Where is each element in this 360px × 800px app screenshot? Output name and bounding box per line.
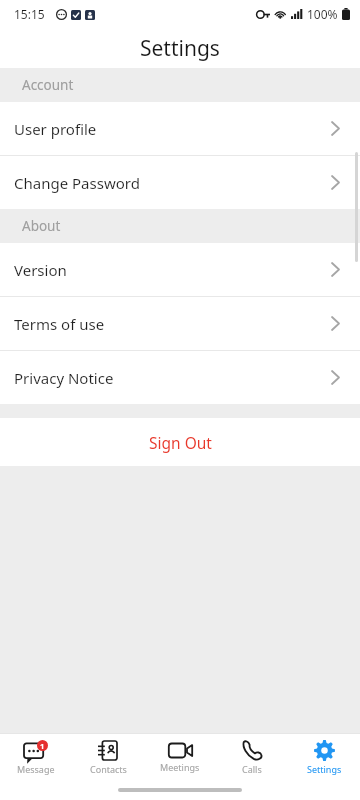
button[interactable]: Version (0, 243, 360, 296)
staticText: Contacts (90, 763, 127, 775)
button[interactable]: Sign Out (0, 418, 360, 466)
button[interactable]: 1 (0, 734, 72, 780)
button[interactable]: Settings (288, 734, 360, 780)
staticText: Privacy Notice (14, 368, 114, 388)
staticText: 1 (40, 741, 45, 751)
staticText: Settings (307, 763, 342, 775)
staticText: Change Password (14, 173, 140, 193)
button[interactable]: Change Password (0, 156, 360, 209)
staticText: User profile (14, 119, 97, 139)
staticText: 15:15 (14, 6, 45, 22)
staticText: About (22, 217, 61, 235)
staticText: Message (17, 763, 55, 775)
button[interactable]: User profile (0, 102, 360, 155)
button[interactable]: Terms of use (0, 297, 360, 350)
staticText: Terms of use (14, 314, 105, 334)
staticText: Meetings (160, 761, 200, 773)
button[interactable]: Contacts (72, 734, 144, 780)
button[interactable]: Calls (216, 734, 288, 780)
staticText: Calls (242, 763, 262, 775)
staticText: Sign Out (149, 432, 212, 453)
staticText: Account (22, 76, 74, 94)
button[interactable]: Privacy Notice (0, 351, 360, 404)
staticText: 100% (307, 6, 338, 22)
staticText: Version (14, 260, 67, 280)
staticText: Settings (140, 34, 220, 63)
button[interactable]: Meetings (144, 734, 216, 780)
